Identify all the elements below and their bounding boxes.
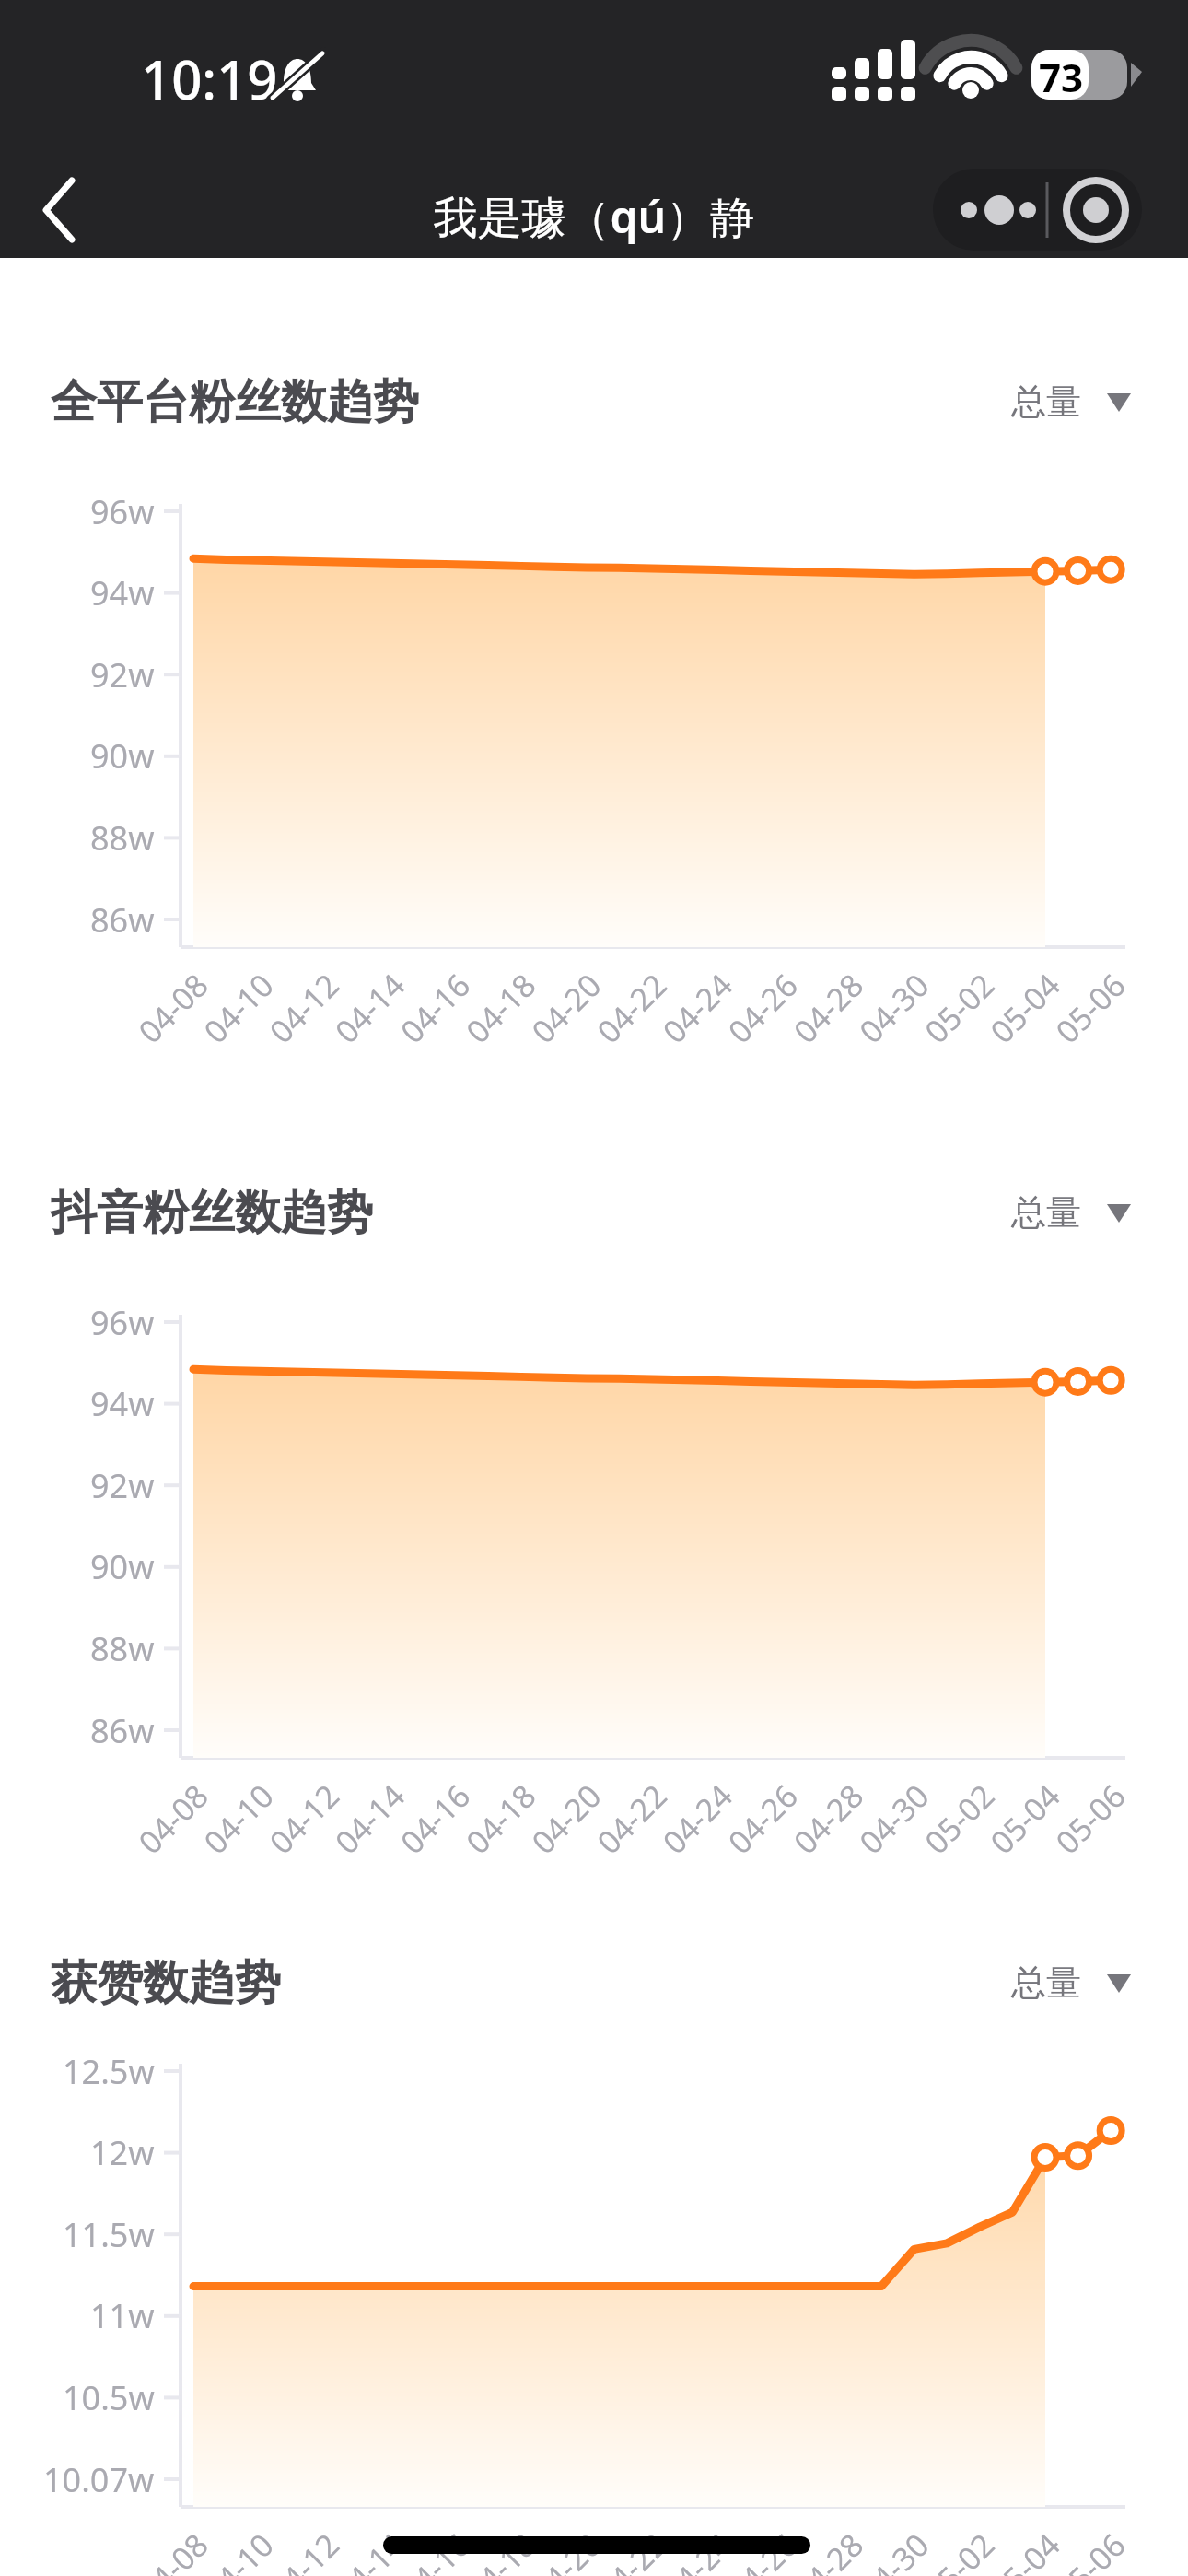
button[interactable] xyxy=(985,1179,1142,1249)
button[interactable]: Back xyxy=(17,171,94,249)
button[interactable] xyxy=(985,369,1142,439)
button[interactable]: More options and close xyxy=(933,169,1142,251)
button[interactable] xyxy=(985,1950,1142,2020)
